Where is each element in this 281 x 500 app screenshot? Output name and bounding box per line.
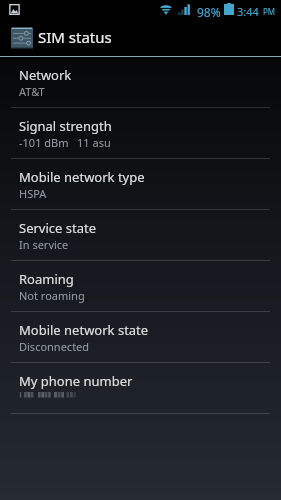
staticText: SIM status <box>38 27 112 47</box>
button[interactable]: Service state <box>0 210 281 261</box>
button[interactable]: Signal strength <box>0 108 281 159</box>
button[interactable]: My phone number <box>0 363 281 414</box>
button[interactable]: Mobile network state <box>0 312 281 363</box>
staticText: In service <box>19 237 69 252</box>
staticText: My phone number <box>19 372 133 390</box>
staticText: Roaming <box>19 270 74 288</box>
button[interactable]: Navigate up to Settings <box>0 18 281 57</box>
staticText: 3:44 <box>237 4 259 19</box>
staticText: -101 dBm 11 asu <box>19 135 111 150</box>
button[interactable]: Mobile network type <box>0 159 281 210</box>
staticText: Disconnected <box>19 339 90 354</box>
other: Phone number hidden <box>19 390 79 399</box>
button[interactable]: Roaming <box>0 261 281 312</box>
staticText: Mobile network type <box>19 168 145 186</box>
staticText: HSPA <box>19 186 47 201</box>
staticText: 98% <box>197 4 221 20</box>
staticText: Not roaming <box>19 288 85 303</box>
button[interactable]: Network <box>0 57 281 108</box>
staticText: Mobile network state <box>19 321 149 339</box>
staticText: Network <box>19 66 72 84</box>
staticText: AT&T <box>19 84 45 99</box>
staticText: Signal strength <box>19 117 112 135</box>
staticText: Service state <box>19 219 96 237</box>
staticText: PM <box>263 6 276 17</box>
